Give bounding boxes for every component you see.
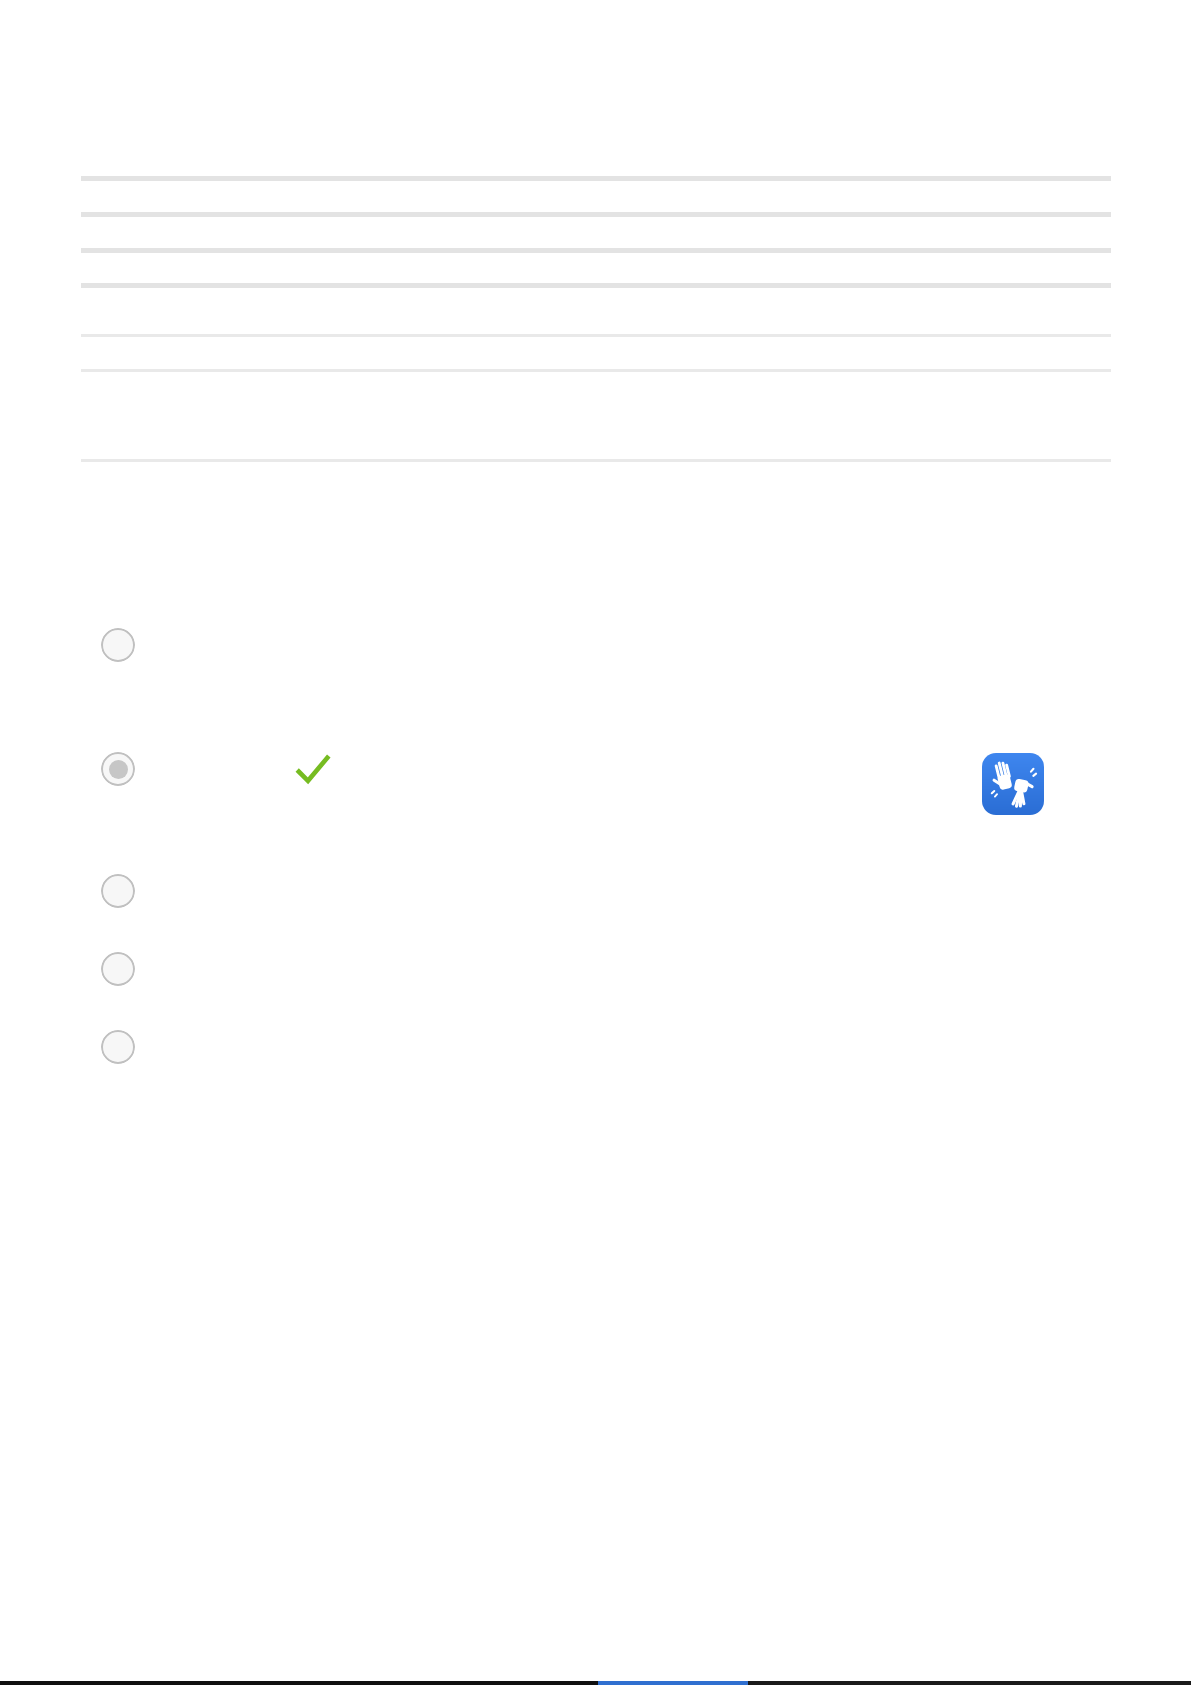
button[interactable]: Option 1	[81, 611, 1111, 679]
button[interactable]: Option 4	[81, 935, 1111, 1003]
other: Verified	[292, 750, 332, 790]
button[interactable]: Sign language interpreter	[982, 753, 1044, 815]
button[interactable]: Option 5	[81, 1013, 1111, 1081]
button[interactable]: Option 2	[81, 735, 1111, 803]
button[interactable]: Option 3	[81, 857, 1111, 925]
